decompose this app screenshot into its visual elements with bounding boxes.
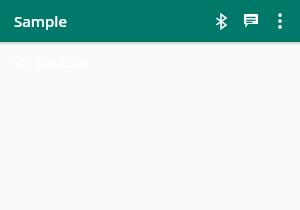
button[interactable]: Messages	[236, 6, 266, 36]
staticText: Sample	[14, 11, 67, 31]
button[interactable]: More options	[266, 7, 294, 35]
button[interactable]: Bluetooth	[206, 6, 236, 36]
